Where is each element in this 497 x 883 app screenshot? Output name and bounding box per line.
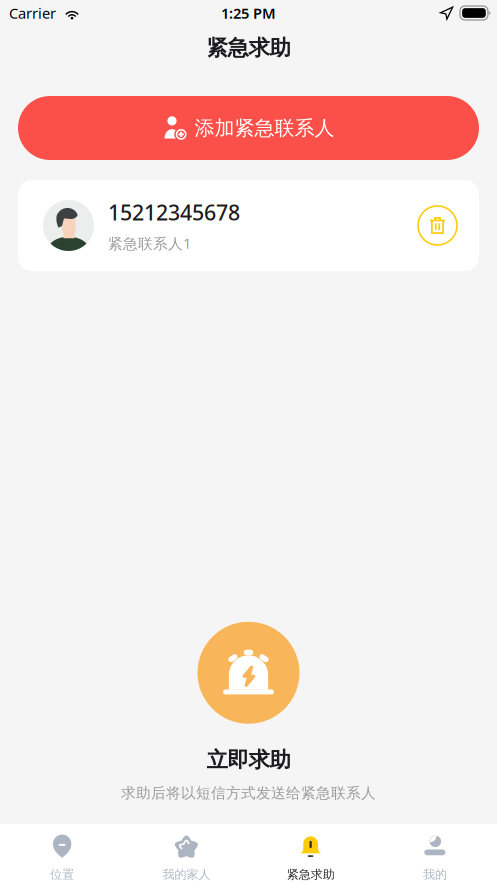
staticText: 1:25 PM — [221, 3, 276, 23]
staticText: 我的家人 — [162, 867, 210, 882]
button[interactable]: 15212345678 — [18, 180, 479, 271]
staticText: 紧急求助 — [287, 867, 335, 882]
button[interactable]: 位置 — [0, 823, 124, 883]
staticText: 添加紧急联系人 — [194, 116, 334, 140]
staticText: 15212345678 — [108, 198, 240, 226]
staticText: 位置 — [50, 867, 74, 882]
button[interactable]: 添加紧急联系人 — [18, 96, 479, 160]
staticText: 紧急联系人1 — [108, 233, 191, 253]
button[interactable]: 我的家人 — [124, 823, 248, 883]
staticText: 立即求助 — [206, 747, 290, 773]
button[interactable]: 立即求助 — [197, 622, 299, 724]
staticText: Carrier — [9, 3, 56, 23]
staticText: 紧急求助 — [206, 35, 290, 61]
staticText: 我的 — [423, 867, 447, 882]
staticText: 求助后将以短信方式发送给紧急联系人 — [121, 784, 376, 802]
button[interactable]: 紧急求助 — [248, 823, 373, 883]
button[interactable]: 我的 — [373, 823, 497, 883]
